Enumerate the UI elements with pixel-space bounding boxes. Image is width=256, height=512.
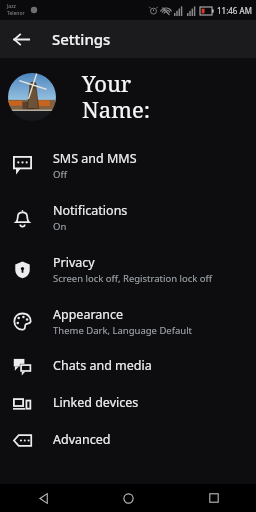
button[interactable]: Chats and media	[0, 347, 256, 384]
staticText: Your Name:	[82, 68, 182, 125]
staticText: On	[53, 220, 67, 233]
button[interactable]: Notifications	[0, 191, 256, 243]
button[interactable]: Privacy	[0, 243, 256, 295]
staticText: Telenor	[7, 10, 25, 17]
staticText: Privacy	[53, 254, 95, 271]
staticText: Notifications	[53, 202, 128, 219]
staticText: Chats and media	[53, 357, 152, 374]
button[interactable]: Back	[8, 26, 34, 52]
staticText: Theme Dark, Language Default	[53, 324, 193, 337]
button[interactable]: Linked devices	[0, 384, 256, 421]
button[interactable]: Recent apps	[171, 484, 256, 512]
button[interactable]: Home	[86, 484, 171, 512]
staticText: 11:46 AM	[217, 5, 252, 16]
staticText: Jazz	[7, 3, 16, 10]
button[interactable]: Appearance	[0, 295, 256, 347]
staticText: Advanced	[53, 431, 111, 448]
staticText: Settings	[52, 29, 111, 49]
button[interactable]: SMS and MMS	[0, 139, 256, 191]
button[interactable]: Back	[0, 484, 86, 512]
button[interactable]: Your Name:	[0, 64, 256, 129]
staticText: Appearance	[53, 306, 124, 323]
staticText: SMS and MMS	[53, 150, 137, 167]
button[interactable]: Advanced	[0, 421, 256, 458]
staticText: Off	[53, 168, 67, 181]
staticText: Linked devices	[53, 394, 139, 411]
staticText: Screen lock off, Registration lock off	[53, 272, 213, 285]
